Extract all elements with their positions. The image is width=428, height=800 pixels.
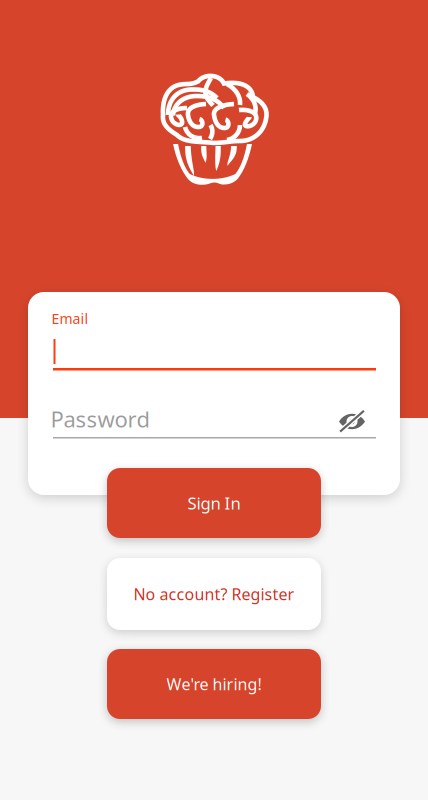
staticText: Email [51,309,88,328]
staticText: No account? Register [133,583,294,605]
staticText: Sign In [187,492,240,514]
staticText: Password [50,404,150,434]
button[interactable]: Sign In [107,468,321,538]
button[interactable]: We're hiring! [107,649,321,719]
button[interactable]: Show password [330,402,373,441]
staticText: We're hiring! [166,673,261,695]
button[interactable]: No account? Register [107,558,321,630]
